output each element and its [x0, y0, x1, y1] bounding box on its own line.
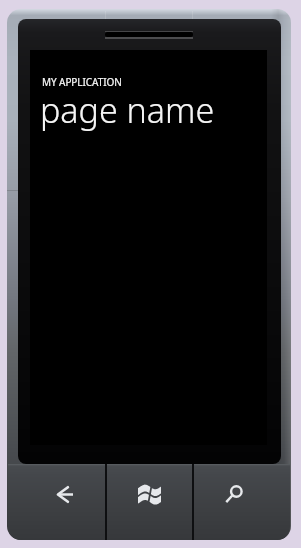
staticText: MY APPLICATION	[42, 75, 122, 89]
button[interactable]: Search	[194, 464, 290, 540]
button[interactable]: Start	[107, 464, 192, 540]
button[interactable]: Back	[8, 464, 105, 540]
staticText: page name	[40, 87, 215, 133]
